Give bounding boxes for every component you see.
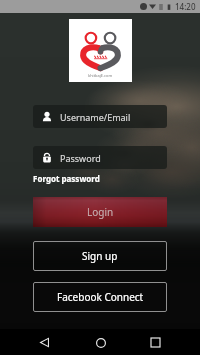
button[interactable]: Facebook Connect xyxy=(33,282,167,312)
staticText: Sign up xyxy=(82,249,118,263)
button[interactable]: Login xyxy=(33,197,167,227)
button[interactable]: Back xyxy=(32,330,57,355)
button[interactable]: Recent apps xyxy=(143,330,168,355)
staticText: 14:20 xyxy=(175,1,196,12)
button[interactable]: Password xyxy=(33,146,167,169)
button[interactable]: Home xyxy=(88,330,113,355)
staticText: Username/Email xyxy=(60,111,131,123)
staticText: Login xyxy=(87,205,114,219)
staticText: khitbajE.com xyxy=(88,73,113,78)
button[interactable]: Forgot password xyxy=(33,173,100,184)
staticText: Password xyxy=(60,152,101,164)
button[interactable]: Username/Email xyxy=(33,105,167,128)
staticText: Facebook Connect xyxy=(57,290,144,304)
button[interactable]: Sign up xyxy=(33,241,167,271)
staticText: Forgot password xyxy=(33,173,100,184)
